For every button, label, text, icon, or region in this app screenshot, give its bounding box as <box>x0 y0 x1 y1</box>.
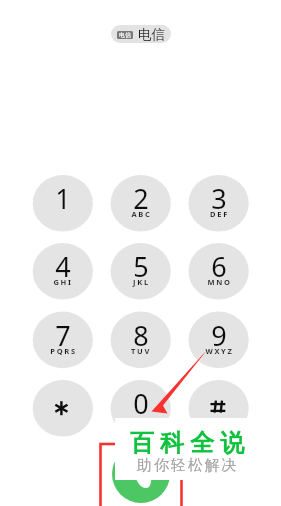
staticText: MNO <box>207 277 232 287</box>
button[interactable] <box>33 243 93 300</box>
staticText: 1 <box>55 180 71 217</box>
staticText: 2 <box>133 180 149 217</box>
staticText: 4 <box>55 248 71 285</box>
staticText: 3 <box>211 180 227 217</box>
staticText: 助你轻松解决 <box>137 456 239 475</box>
staticText: 电信 <box>138 26 165 43</box>
button[interactable] <box>111 243 171 300</box>
button[interactable] <box>33 312 93 369</box>
staticText: 5 <box>133 248 149 285</box>
staticText: 百科全说 <box>127 428 247 458</box>
button[interactable] <box>111 175 171 232</box>
staticText: 8 <box>133 317 149 354</box>
staticText: ABC <box>131 209 152 219</box>
button[interactable] <box>33 380 93 437</box>
staticText: 电信 <box>119 31 131 39</box>
staticText: 0 <box>133 385 149 422</box>
staticText: GHI <box>53 277 73 287</box>
button[interactable] <box>111 312 171 369</box>
button[interactable] <box>189 175 249 232</box>
button[interactable] <box>189 380 249 437</box>
button[interactable] <box>189 243 249 300</box>
staticText: DEF <box>210 209 229 219</box>
staticText: 6 <box>211 248 227 285</box>
staticText: 7 <box>55 317 71 354</box>
button[interactable] <box>33 175 93 232</box>
staticText: TUV <box>131 346 151 356</box>
staticText: JKL <box>133 277 150 287</box>
button[interactable]: Call <box>112 445 170 503</box>
staticText: WXYZ <box>205 346 234 356</box>
staticText: PQRS <box>50 346 77 356</box>
staticText: 9 <box>211 317 227 354</box>
button[interactable] <box>111 380 171 437</box>
button[interactable] <box>189 312 249 369</box>
button[interactable]: 电信 <box>111 25 171 43</box>
